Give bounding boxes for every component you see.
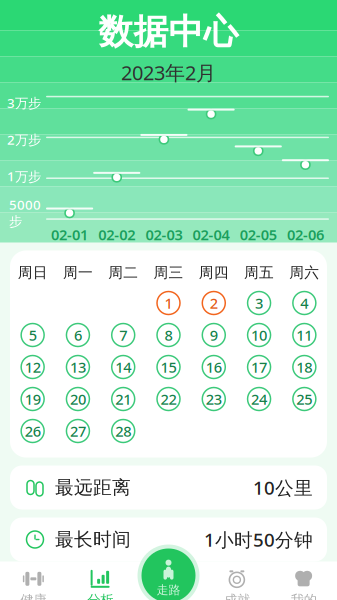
button[interactable]: 10: [244, 322, 274, 347]
button[interactable]: 26: [18, 418, 48, 443]
button[interactable]: 12: [18, 354, 48, 379]
button[interactable]: 7: [108, 322, 138, 347]
button[interactable]: 15: [153, 354, 183, 379]
staticText: 18: [296, 357, 312, 377]
staticText: 21: [115, 389, 131, 409]
button[interactable]: 22: [153, 386, 183, 411]
staticText: 最长时间: [55, 528, 131, 551]
button[interactable]: 27: [63, 418, 93, 443]
button[interactable]: 2: [199, 290, 229, 315]
staticText: 28: [115, 421, 131, 441]
button[interactable]: 5: [18, 322, 48, 347]
staticText: 02-04: [193, 225, 230, 244]
staticText: 分析: [87, 592, 113, 600]
staticText: 2023年2月: [121, 59, 216, 86]
button[interactable]: 24: [244, 386, 274, 411]
staticText: 数据中心: [98, 11, 238, 53]
button[interactable]: 走路: [136, 543, 200, 600]
staticText: 3: [255, 293, 263, 313]
staticText: 02-02: [98, 225, 135, 244]
button[interactable]: 8: [153, 322, 183, 347]
staticText: 12: [25, 357, 41, 377]
button[interactable]: 20: [63, 386, 93, 411]
button[interactable]: 健康: [0, 561, 67, 600]
staticText: 13: [70, 357, 86, 377]
staticText: 2万步: [7, 131, 41, 148]
staticText: 23: [206, 389, 222, 409]
staticText: 2: [210, 293, 218, 313]
button[interactable]: 成就: [203, 561, 270, 600]
staticText: 02-05: [240, 225, 277, 244]
staticText: 7: [119, 325, 127, 345]
button[interactable]: 16: [199, 354, 229, 379]
button[interactable]: 14: [108, 354, 138, 379]
staticText: 02-03: [145, 225, 182, 244]
button[interactable]: 21: [108, 386, 138, 411]
staticText: 周二: [108, 263, 138, 281]
staticText: 25: [296, 389, 312, 409]
staticText: 27: [70, 421, 86, 441]
staticText: 我的: [291, 592, 317, 600]
staticText: 周三: [153, 263, 183, 281]
button[interactable]: 13: [63, 354, 93, 379]
staticText: 最远距离: [55, 476, 131, 499]
staticText: 10: [251, 325, 267, 345]
button[interactable]: 6: [63, 322, 93, 347]
staticText: 22: [160, 389, 176, 409]
button[interactable]: 25: [289, 386, 319, 411]
staticText: 24: [251, 389, 267, 409]
staticText: 20: [70, 389, 86, 409]
staticText: 成就: [224, 592, 250, 600]
staticText: 周四: [199, 263, 229, 281]
button[interactable]: 18: [289, 354, 319, 379]
staticText: 6: [74, 325, 82, 345]
staticText: 26: [25, 421, 41, 441]
staticText: 9: [210, 325, 218, 345]
button[interactable]: 28: [108, 418, 138, 443]
staticText: 16: [206, 357, 222, 377]
staticText: 1万步: [7, 167, 41, 185]
button[interactable]: 3: [244, 290, 274, 315]
staticText: 17: [251, 357, 267, 377]
staticText: 5000步: [9, 196, 41, 230]
staticText: 5: [29, 325, 37, 345]
button[interactable]: 我的: [270, 561, 337, 600]
button[interactable]: 1: [153, 290, 183, 315]
button[interactable]: 分析: [67, 561, 134, 600]
staticText: 健康: [20, 592, 46, 600]
staticText: 10公里: [253, 475, 313, 500]
staticText: 周一: [63, 263, 93, 281]
button[interactable]: 最长时间: [10, 517, 327, 561]
staticText: 走路: [156, 583, 180, 597]
staticText: 8: [164, 325, 172, 345]
staticText: 11: [296, 325, 312, 345]
button[interactable]: 23: [199, 386, 229, 411]
staticText: 02-06: [287, 225, 324, 244]
staticText: 19: [25, 389, 41, 409]
staticText: 周日: [18, 263, 48, 281]
staticText: 周六: [289, 263, 319, 281]
button[interactable]: 19: [18, 386, 48, 411]
staticText: 1: [164, 293, 172, 313]
button[interactable]: 11: [289, 322, 319, 347]
staticText: 周五: [244, 263, 274, 281]
staticText: 02-01: [51, 225, 88, 244]
button[interactable]: 17: [244, 354, 274, 379]
button[interactable]: 4: [289, 290, 319, 315]
staticText: 15: [160, 357, 176, 377]
staticText: 14: [115, 357, 131, 377]
staticText: 1小时50分钟: [204, 527, 313, 552]
staticText: 3万步: [7, 94, 41, 112]
button[interactable]: 9: [199, 322, 229, 347]
staticText: 4: [300, 293, 308, 313]
button[interactable]: 最远距离: [10, 465, 327, 509]
